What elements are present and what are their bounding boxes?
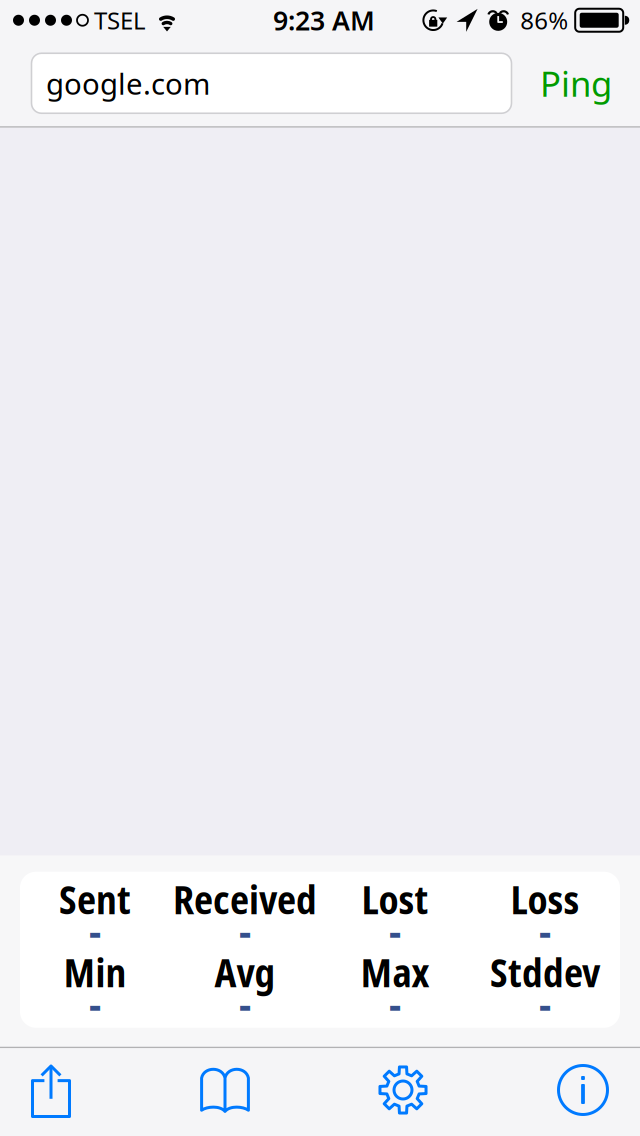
button[interactable]: Settings — [359, 1046, 447, 1134]
staticText: - — [539, 904, 551, 957]
staticText: - — [239, 904, 251, 957]
staticText: Lost — [361, 873, 428, 926]
staticText: Max — [360, 946, 429, 999]
staticText: Stddev — [490, 946, 600, 999]
staticText: - — [389, 904, 401, 957]
staticText: - — [89, 904, 101, 957]
button[interactable]: google.com — [32, 53, 511, 113]
staticText: - — [239, 977, 251, 1030]
staticText: Ping — [540, 60, 612, 106]
staticText: Min — [63, 946, 126, 999]
staticText: Loss — [510, 873, 579, 926]
staticText: - — [389, 977, 401, 1030]
staticText: Received — [173, 873, 317, 926]
staticText: - — [539, 977, 551, 1030]
staticText: Avg — [214, 946, 275, 999]
button[interactable]: Ping — [528, 53, 624, 113]
button[interactable]: History — [181, 1045, 269, 1133]
staticText: TSEL — [94, 4, 146, 37]
button[interactable]: Share — [7, 1047, 95, 1135]
staticText: Sent — [59, 873, 131, 926]
staticText: google.com — [46, 64, 210, 103]
staticText: 86% — [520, 4, 568, 37]
staticText: - — [89, 977, 101, 1030]
staticText: 9:23 AM — [273, 2, 375, 38]
button[interactable]: Info — [539, 1046, 627, 1134]
